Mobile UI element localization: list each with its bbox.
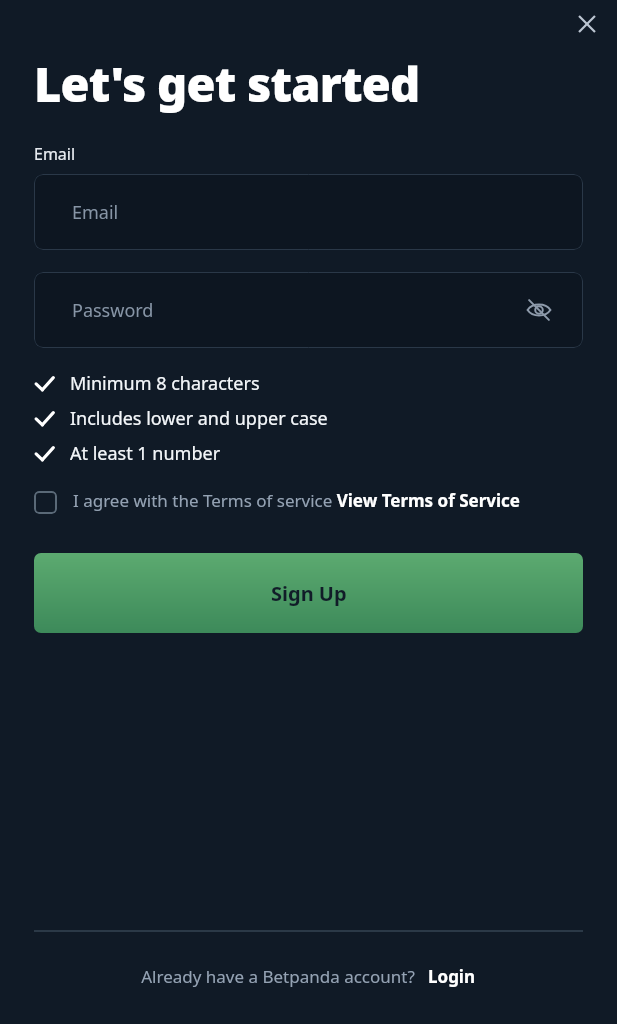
button[interactable]: Sign Up bbox=[34, 553, 583, 633]
button[interactable]: Show password bbox=[519, 290, 559, 330]
staticText: Login bbox=[428, 965, 476, 988]
staticText: Password bbox=[72, 298, 154, 323]
staticText: Email bbox=[72, 200, 119, 225]
staticText: Already have a Betpanda account? bbox=[141, 965, 415, 988]
staticText: Includes lower and upper case bbox=[70, 406, 328, 431]
button[interactable]: Login bbox=[428, 965, 476, 988]
staticText: I agree with the Terms of service View T… bbox=[73, 489, 520, 512]
button[interactable]: Email bbox=[34, 174, 583, 250]
staticText: At least 1 number bbox=[70, 441, 221, 466]
staticText: Sign Up bbox=[271, 580, 347, 607]
button[interactable]: Close bbox=[565, 2, 609, 46]
staticText: Email bbox=[34, 143, 76, 165]
staticText: Let's get started bbox=[34, 52, 420, 116]
button[interactable]: I agree with the Terms of service View T… bbox=[34, 489, 583, 514]
staticText: Minimum 8 characters bbox=[70, 371, 260, 396]
button[interactable]: Password bbox=[34, 272, 583, 348]
